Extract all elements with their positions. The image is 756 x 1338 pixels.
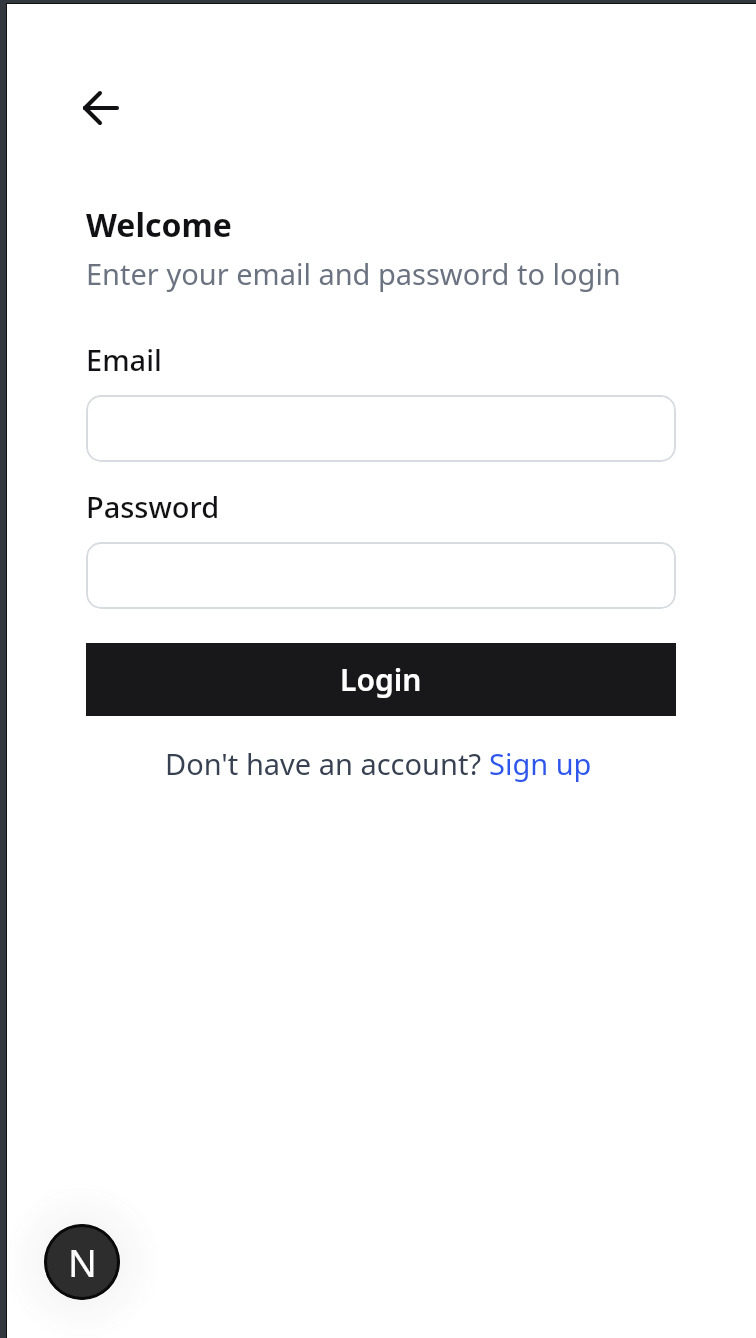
button[interactable]: Login [86,643,676,716]
staticText: Email [86,340,162,379]
staticText: Enter your email and password to login [86,254,621,293]
button[interactable]: Sign up [489,744,592,783]
staticText: Password [86,487,220,526]
staticText: N [68,1236,97,1288]
staticText: Don't have an account? [165,744,489,783]
button[interactable] [78,85,124,131]
button[interactable] [86,542,676,609]
staticText: Welcome [86,203,232,247]
staticText: Login [340,659,422,700]
button[interactable] [86,395,676,462]
button[interactable]: N [44,1224,120,1300]
